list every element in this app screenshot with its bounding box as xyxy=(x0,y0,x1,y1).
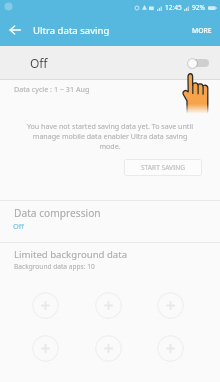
staticText: 12:45 xyxy=(165,3,182,12)
staticText: 92% xyxy=(192,3,206,12)
staticText: Limited background data xyxy=(14,248,128,261)
staticText: Data cycle : 1 ~ 31 Aug xyxy=(14,84,90,94)
button[interactable]: Off xyxy=(0,46,220,79)
staticText: MORE xyxy=(192,26,212,35)
staticText: Data compression xyxy=(14,206,101,220)
staticText: Off xyxy=(30,55,48,71)
button[interactable]: Add app xyxy=(157,335,184,362)
button[interactable]: Data compression xyxy=(0,201,220,242)
staticText: Background data apps: 10 xyxy=(14,262,95,271)
staticText: Ultra data saving xyxy=(33,24,110,37)
button[interactable]: Add app xyxy=(32,292,59,319)
button[interactable]: Add app xyxy=(157,292,184,319)
staticText: START SAVING xyxy=(141,163,186,172)
button[interactable]: MORE xyxy=(184,19,220,42)
button[interactable]: Add app xyxy=(95,335,122,362)
button[interactable]: Add app xyxy=(32,335,59,362)
button[interactable]: START SAVING xyxy=(124,159,202,176)
button[interactable]: Add app xyxy=(95,292,122,319)
button[interactable]: Navigate up xyxy=(3,18,27,42)
staticText: You have not started saving data yet. To… xyxy=(14,121,206,151)
staticText: Off xyxy=(13,221,24,231)
